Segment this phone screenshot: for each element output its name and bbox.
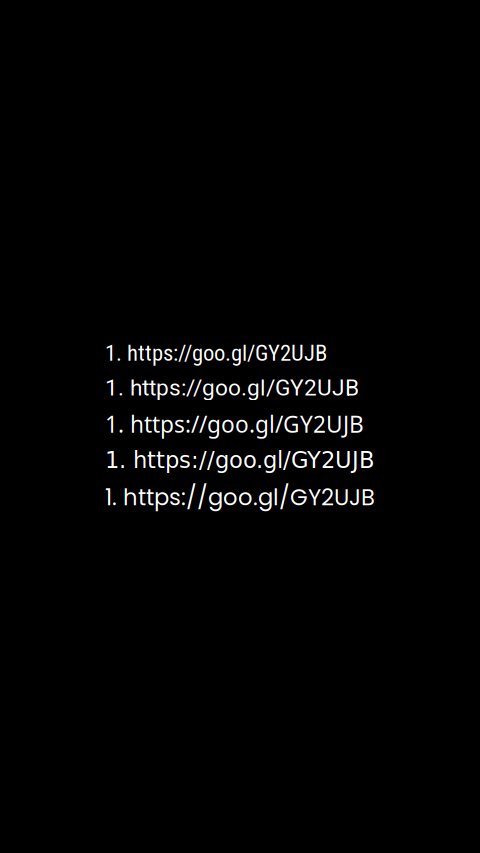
staticText: 1. https://goo.gl/GY2UJB [105,481,375,513]
staticText: 1. https://goo.gl/GY2UJB [105,340,327,366]
staticText: 1. https://goo.gl/GY2UJB [105,447,375,473]
staticText: 1. https://goo.gl/GY2UJB [105,374,359,401]
staticText: 1. https://goo.gl/GY2UJB [105,409,364,439]
